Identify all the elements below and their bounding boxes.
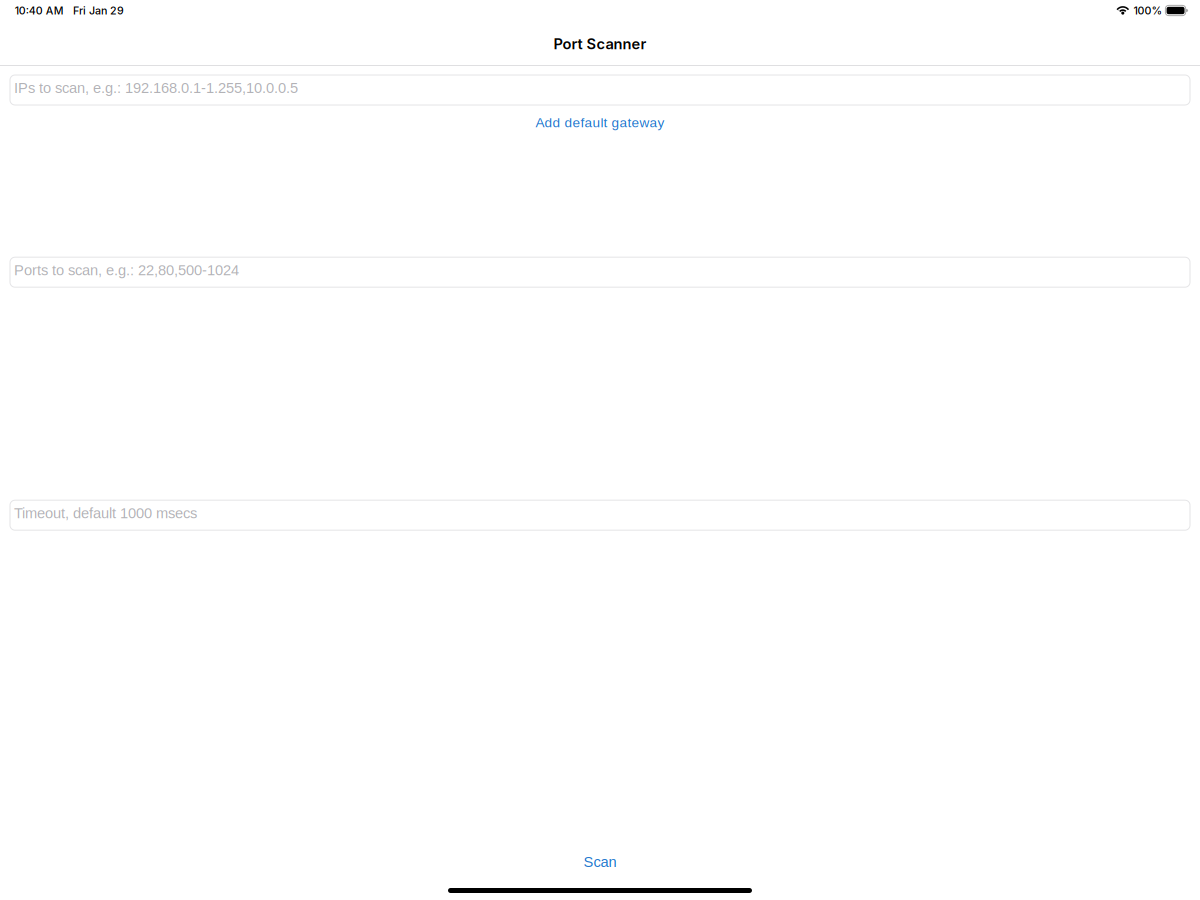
staticText: Port Scanner	[553, 35, 646, 53]
staticText: Ports to scan, e.g.: 22,80,500-1024	[14, 262, 239, 278]
staticText: Add default gateway	[535, 115, 664, 130]
staticText: Timeout, default 1000 msecs	[14, 505, 197, 521]
button[interactable]: Add default gateway	[525, 105, 674, 132]
button[interactable]: Scan	[569, 846, 630, 876]
staticText: Fri Jan 29	[73, 4, 124, 17]
staticText: 10:40 AM	[15, 4, 64, 17]
staticText: Scan	[583, 854, 616, 870]
staticText: 100%	[1133, 4, 1162, 17]
staticText: IPs to scan, e.g.: 192.168.0.1-1.255,10.…	[14, 80, 298, 96]
